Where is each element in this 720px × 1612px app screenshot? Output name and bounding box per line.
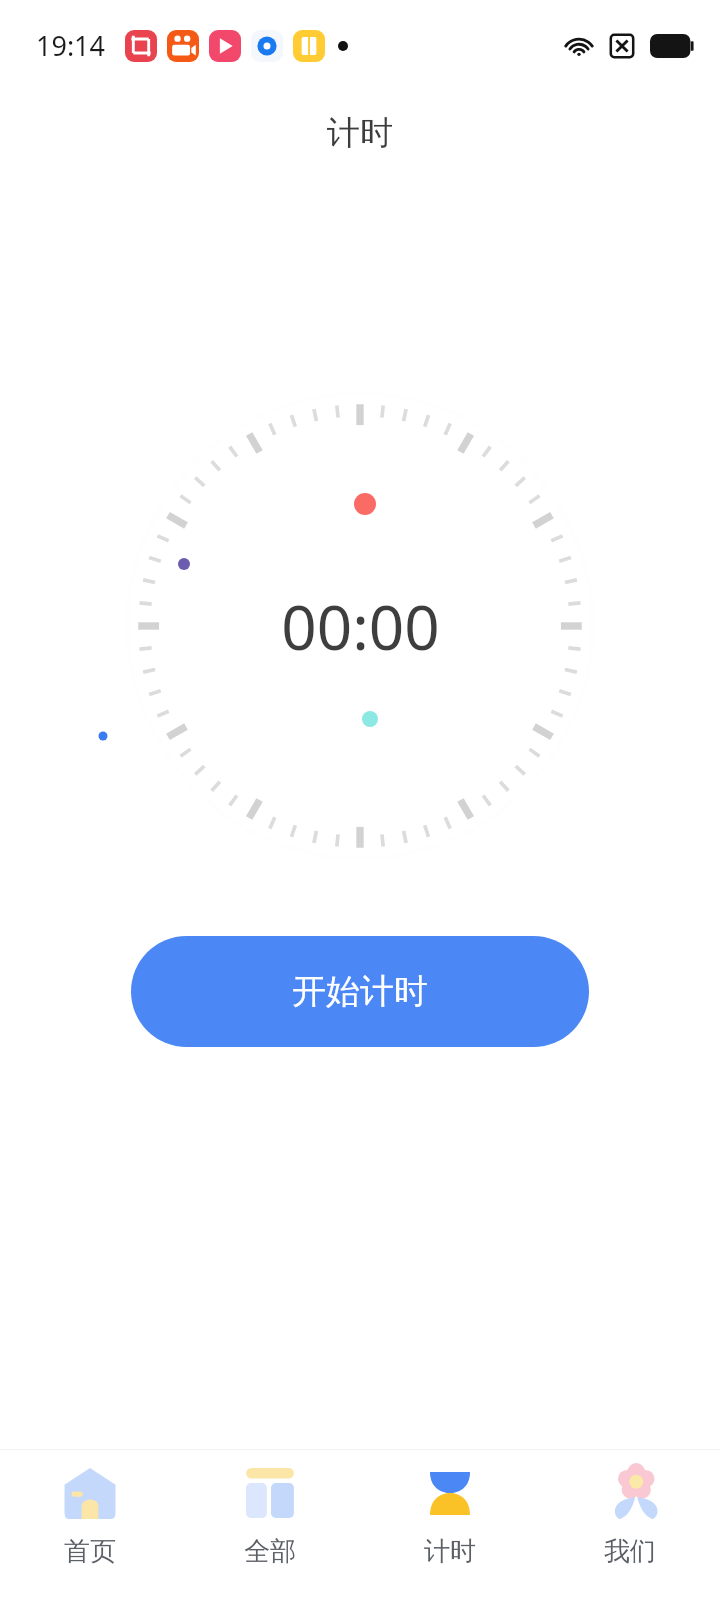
button[interactable]: 首页 <box>0 1450 180 1583</box>
button[interactable]: 全部 <box>180 1450 360 1583</box>
staticText: 计时 <box>424 1535 476 1568</box>
other: 计时 <box>430 1469 470 1517</box>
other: 我们 <box>604 1465 656 1521</box>
staticText: 开始计时 <box>292 970 428 1013</box>
staticText: 00:00 <box>281 584 440 668</box>
staticText: 19:14 <box>36 27 106 64</box>
button[interactable]: 计时 <box>360 1450 540 1583</box>
staticText: 首页 <box>64 1535 116 1568</box>
other: 全部 <box>244 1467 296 1519</box>
other: 首页 <box>62 1467 118 1519</box>
staticText: 全部 <box>244 1535 296 1568</box>
button[interactable]: 开始计时 <box>131 936 589 1047</box>
button[interactable]: 我们 <box>540 1450 720 1583</box>
staticText: 我们 <box>604 1535 656 1568</box>
staticText: 计时 <box>327 112 393 154</box>
